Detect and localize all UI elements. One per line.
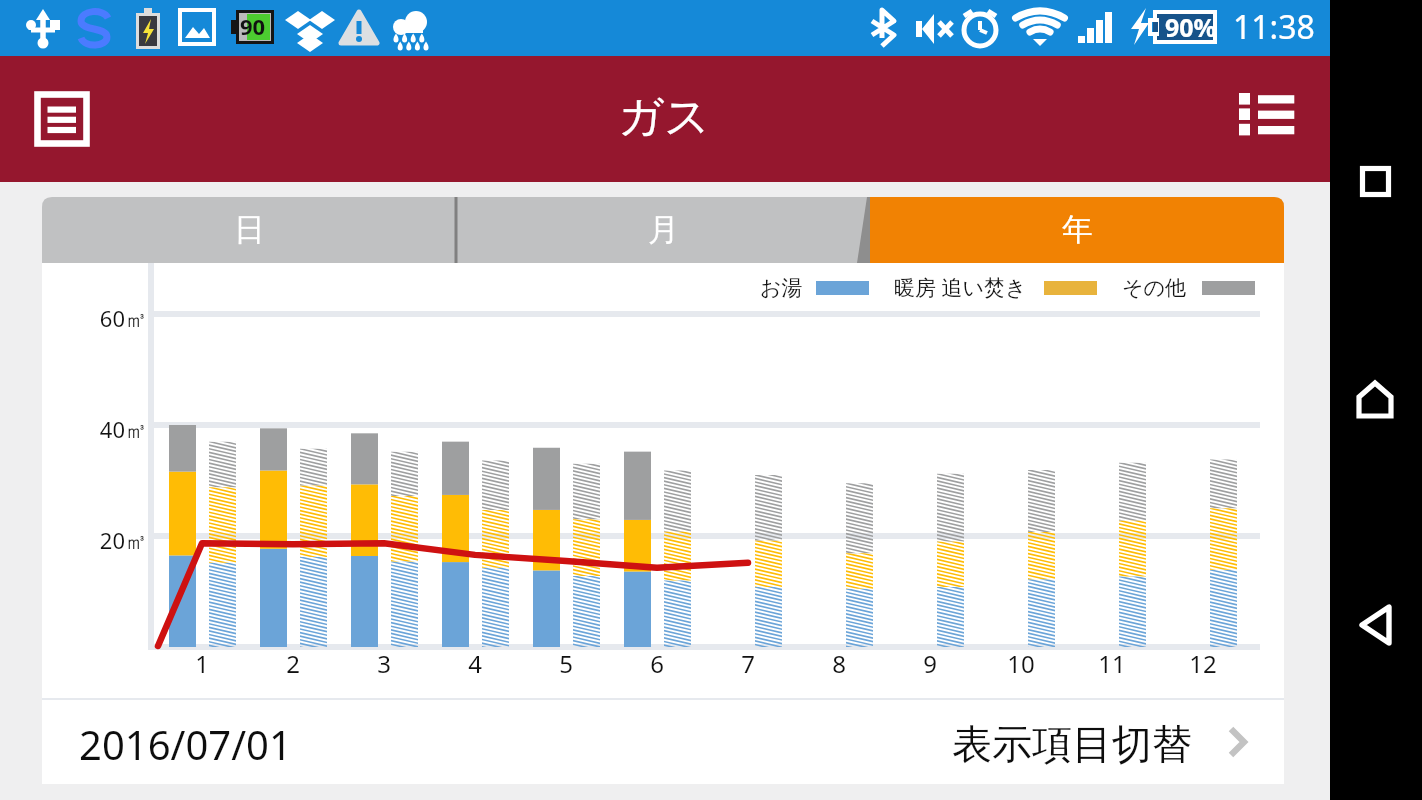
staticText: 10 [999,647,1043,680]
button[interactable]: Recents [1356,162,1396,202]
staticText: 8 [817,647,861,680]
staticText: 7 [726,647,770,680]
staticText: 40㎥ [50,414,147,444]
staticText: 11:38 [1233,5,1315,49]
staticText: 3 [362,647,406,680]
staticText: 90% [1165,10,1217,44]
staticText: 90 [240,11,266,41]
staticText: 2 [271,647,315,680]
button[interactable]: List [1229,81,1305,157]
staticText: 1 [180,647,224,680]
staticText: 表示項目切替 [952,719,1192,769]
staticText: 20㎥ [50,525,147,555]
button[interactable]: 年 [870,197,1284,263]
staticText: 月 [648,210,679,249]
staticText: 9 [908,647,952,680]
staticText: 4 [453,647,497,680]
staticText: 11 [1090,647,1134,680]
button[interactable]: Menu [22,79,102,159]
staticText: お湯 [760,275,803,301]
button[interactable]: Home [1354,376,1402,424]
staticText: 6 [635,647,679,680]
button[interactable]: 月 [456,197,870,263]
button[interactable]: 日 [42,197,456,263]
staticText: ガス [618,89,711,146]
staticText: 年 [1062,210,1093,249]
button[interactable]: 2016/07/01 [42,700,1284,784]
staticText: 12 [1181,647,1225,680]
button[interactable]: Back [1354,599,1402,647]
staticText: その他 [1122,275,1186,301]
staticText: 暖房 追い焚き [894,273,1027,302]
staticText: 2016/07/01 [79,717,292,771]
staticText: 5 [544,647,588,680]
staticText: 日 [234,210,265,249]
staticText: 60㎥ [50,303,147,333]
